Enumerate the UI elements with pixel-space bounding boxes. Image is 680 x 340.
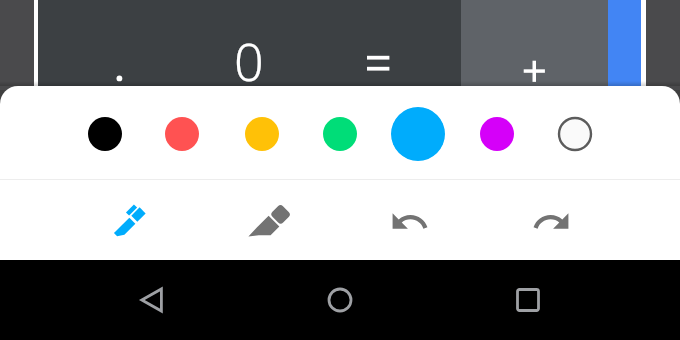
button[interactable]: Colour white xyxy=(548,107,602,161)
button[interactable]: Redo xyxy=(523,193,579,249)
button[interactable]: Undo xyxy=(382,193,438,249)
button[interactable]: Colour 6 xyxy=(470,107,524,161)
button[interactable]: Recent apps xyxy=(496,268,560,332)
button[interactable]: Back xyxy=(120,268,184,332)
button[interactable]: Colour 2 xyxy=(155,107,209,161)
button[interactable]: Colour 1 xyxy=(78,107,132,161)
button[interactable]: Highlighter xyxy=(244,195,300,251)
button[interactable]: Colour 3 xyxy=(235,107,289,161)
button[interactable]: Colour 5 xyxy=(391,107,445,161)
staticText: 0 xyxy=(234,25,264,96)
button[interactable]: Home xyxy=(308,268,372,332)
button[interactable]: Pen xyxy=(103,194,159,250)
button[interactable]: Colour 4 xyxy=(313,107,367,161)
